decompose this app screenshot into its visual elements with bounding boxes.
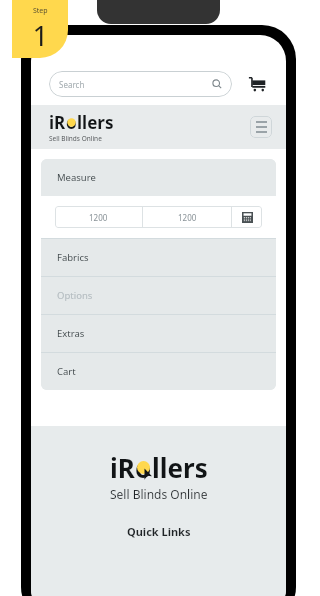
staticText: llers bbox=[152, 450, 208, 485]
button[interactable]: Cart bbox=[41, 353, 276, 390]
staticText: Search bbox=[59, 79, 85, 90]
button[interactable]: Fabrics bbox=[41, 239, 276, 276]
staticText: o bbox=[66, 111, 77, 134]
staticText: Quick Links bbox=[127, 524, 191, 539]
staticText: Cart bbox=[57, 365, 76, 378]
button[interactable]: Options bbox=[41, 277, 276, 314]
staticText: llers bbox=[77, 111, 114, 134]
button[interactable]: Extras bbox=[41, 315, 276, 352]
staticText: Sell Blinds Online bbox=[49, 134, 102, 143]
staticText: 1200 bbox=[89, 212, 108, 223]
staticText: Sell Blinds Online bbox=[110, 486, 208, 502]
staticText: Step bbox=[33, 6, 48, 16]
staticText: o bbox=[135, 450, 152, 485]
button[interactable]: Search bbox=[49, 71, 232, 97]
staticText: Extras bbox=[57, 327, 85, 340]
button[interactable]: Calculator bbox=[232, 206, 262, 228]
staticText: 1 bbox=[32, 16, 49, 54]
button[interactable]: 1200 bbox=[143, 206, 231, 228]
staticText: iR bbox=[49, 111, 66, 134]
button[interactable]: Measure bbox=[41, 159, 276, 196]
staticText: Measure bbox=[57, 171, 96, 184]
button[interactable]: Menu bbox=[250, 116, 272, 138]
staticText: Options bbox=[57, 289, 93, 302]
button[interactable]: Cart bbox=[246, 73, 268, 95]
staticText: Fabrics bbox=[57, 251, 89, 264]
staticText: 1200 bbox=[178, 212, 197, 223]
staticText: iR bbox=[110, 450, 135, 485]
button[interactable]: 1200 bbox=[55, 206, 142, 228]
